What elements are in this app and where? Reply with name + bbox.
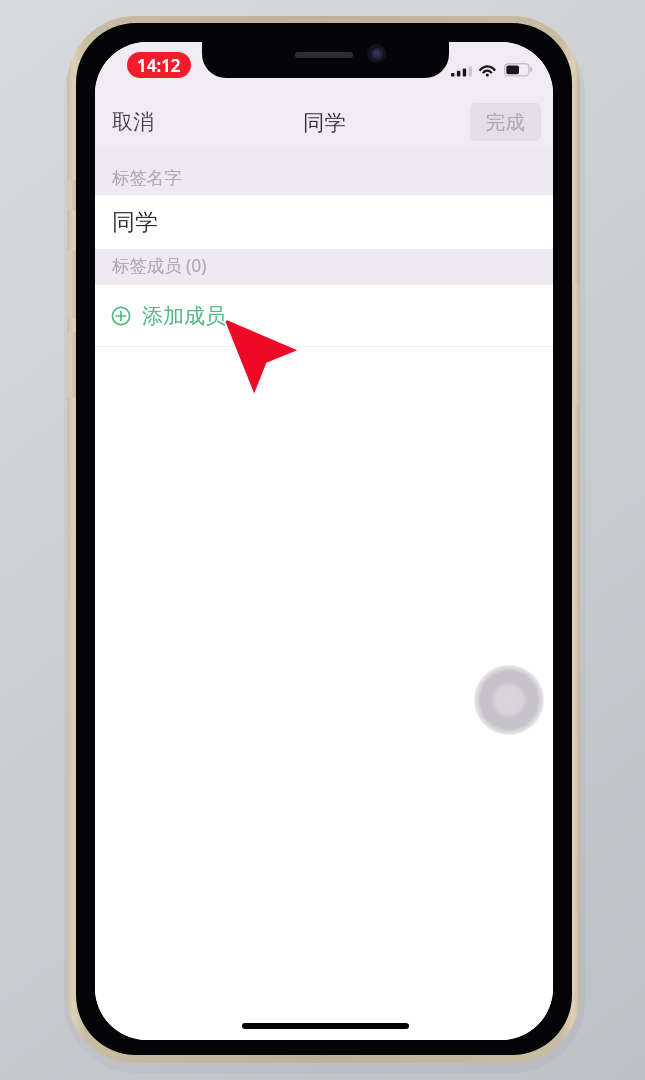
- other: Wi-Fi: [478, 63, 497, 76]
- staticText: 标签名字: [112, 167, 182, 189]
- staticText: 取消: [112, 109, 154, 135]
- button[interactable]: 取消: [95, 100, 174, 144]
- staticText: 同学: [112, 208, 158, 237]
- button[interactable]: 添加成员: [95, 285, 553, 346]
- staticText: 同学: [303, 109, 346, 136]
- other: Cellular signal: [451, 63, 472, 77]
- button[interactable]: AssistiveTouch: [470, 661, 548, 739]
- staticText: 标签成员 (0): [112, 253, 207, 277]
- staticText: 14:12: [137, 54, 181, 77]
- staticText: 添加成员: [142, 303, 226, 329]
- other: Battery: [504, 63, 533, 78]
- button[interactable]: 同学: [95, 195, 553, 249]
- button[interactable]: 完成: [470, 103, 541, 141]
- staticText: 完成: [486, 110, 525, 135]
